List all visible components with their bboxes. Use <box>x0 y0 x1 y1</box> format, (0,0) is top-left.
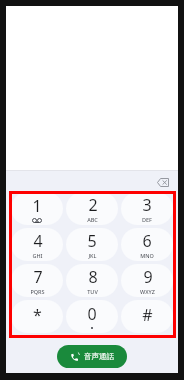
staticText: 1 <box>32 195 42 217</box>
staticText: TUV <box>87 288 98 295</box>
button[interactable]: 2 <box>66 192 118 225</box>
staticText: ABC <box>87 216 98 223</box>
staticText: MNO <box>140 252 154 259</box>
staticText: 6 <box>142 230 152 252</box>
button[interactable]: # <box>121 300 173 333</box>
staticText: # <box>142 304 153 326</box>
staticText: 2 <box>88 194 98 216</box>
staticText: 4 <box>33 230 43 252</box>
button[interactable]: 音声通話 <box>57 345 127 368</box>
staticText: 8 <box>88 266 98 288</box>
staticText: 0 <box>87 303 97 325</box>
button[interactable]: 7 <box>11 264 63 297</box>
button[interactable]: * <box>11 300 63 333</box>
staticText: 音声通話 <box>84 352 114 361</box>
button[interactable]: 6 <box>121 228 173 261</box>
staticText: 5 <box>87 230 97 252</box>
button[interactable]: 9 <box>121 264 173 297</box>
staticText: WXYZ <box>140 288 155 295</box>
staticText: * <box>33 304 42 326</box>
button[interactable]: 3 <box>121 192 173 225</box>
staticText: 9 <box>143 266 153 288</box>
staticText: 3 <box>142 194 152 216</box>
button[interactable]: 0 <box>66 300 118 333</box>
staticText: 7 <box>33 266 43 288</box>
staticText: GHI <box>32 252 43 259</box>
staticText: JKL <box>88 252 97 259</box>
button[interactable]: Backspace <box>155 174 171 190</box>
button[interactable]: 1 <box>11 192 63 225</box>
staticText: DEF <box>142 216 152 223</box>
staticText: PQRS <box>30 288 45 295</box>
button[interactable]: 5 <box>66 228 118 261</box>
button[interactable]: 4 <box>11 228 63 261</box>
button[interactable]: 8 <box>66 264 118 297</box>
